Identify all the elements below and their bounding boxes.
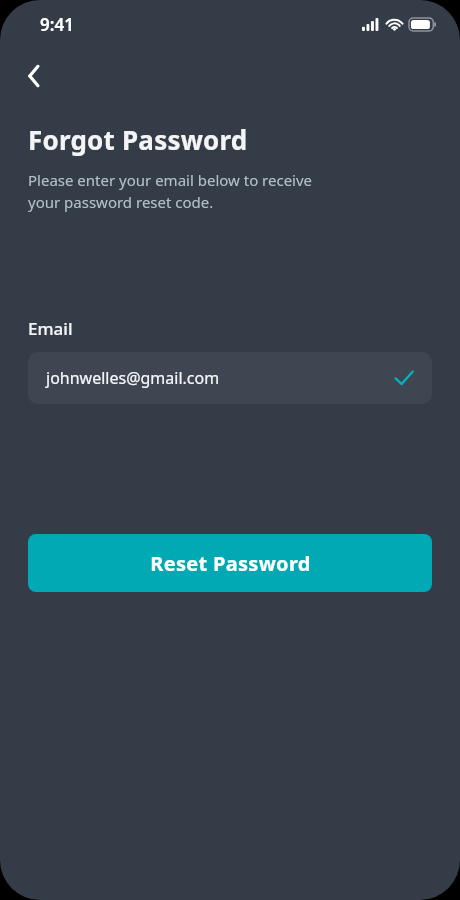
staticText: Reset Password xyxy=(150,550,311,577)
staticText: Email xyxy=(28,317,73,340)
button[interactable]: Back xyxy=(14,56,54,96)
button[interactable]: Reset Password xyxy=(28,534,432,592)
staticText: Forgot Password xyxy=(28,122,248,157)
staticText: 9:41 xyxy=(40,13,74,36)
staticText: Please enter your email below to receive… xyxy=(28,170,313,213)
staticText: johnwelles@gmail.com xyxy=(46,367,220,389)
button[interactable]: johnwelles@gmail.com xyxy=(28,352,432,404)
